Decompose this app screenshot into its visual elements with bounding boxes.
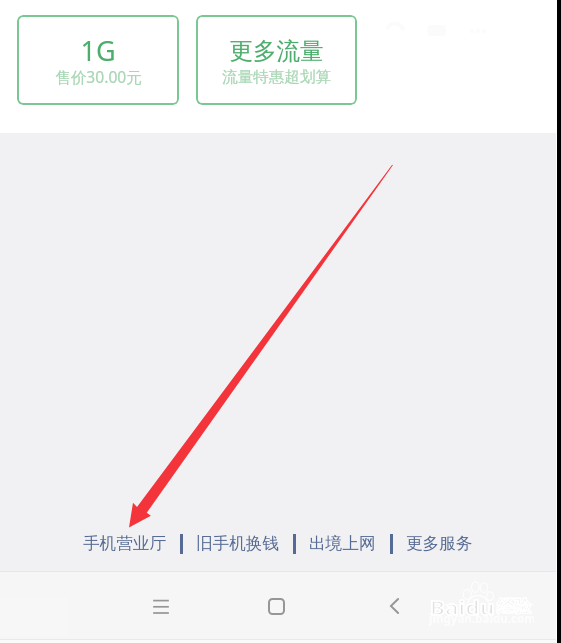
staticText: 经验: [497, 596, 531, 617]
staticText: 更多流量: [229, 36, 324, 66]
button[interactable]: 出境上网: [309, 533, 376, 554]
button[interactable]: 旧手机换钱: [196, 533, 279, 554]
staticText: 手机营业厅: [83, 533, 166, 554]
button[interactable]: 更多服务: [406, 533, 473, 554]
button[interactable]: 手机营业厅: [83, 533, 166, 554]
button[interactable]: Home: [248, 580, 305, 632]
staticText: Baidu: [430, 594, 495, 621]
staticText: Baidu: [430, 594, 495, 621]
staticText: 售价30.00元: [55, 66, 142, 87]
staticText: 1G: [80, 32, 116, 69]
staticText: 经验: [497, 596, 531, 617]
staticText: 更多服务: [406, 533, 473, 554]
staticText: 流量特惠超划算: [222, 67, 331, 87]
staticText: 出境上网: [309, 533, 376, 554]
button[interactable]: Back: [363, 580, 420, 632]
staticText: 旧手机换钱: [196, 533, 279, 554]
staticText: jingyan.baidu.com: [429, 611, 534, 627]
button[interactable]: 1G: [17, 15, 179, 105]
button[interactable]: 更多流量: [196, 15, 357, 105]
button[interactable]: Recent apps: [132, 580, 189, 632]
